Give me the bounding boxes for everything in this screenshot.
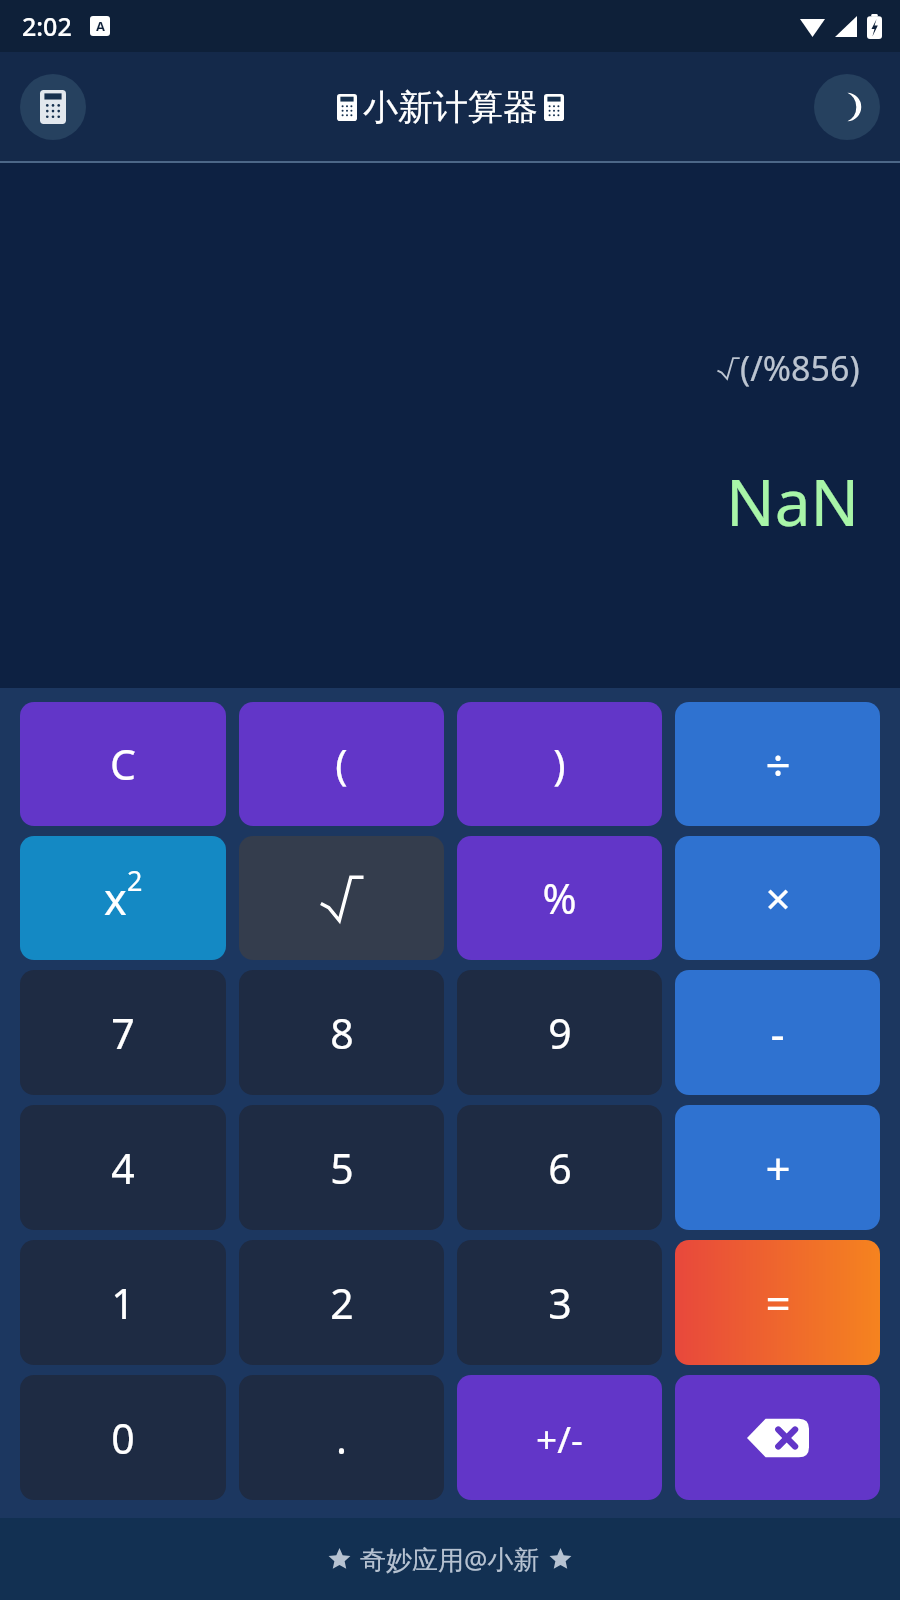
staticText: C	[110, 736, 136, 792]
staticText: -	[770, 1003, 785, 1063]
staticText: ÷	[765, 734, 791, 794]
button[interactable]: %	[457, 836, 662, 960]
button[interactable]: 8	[239, 970, 444, 1095]
staticText: (	[335, 736, 348, 792]
staticText: NaN	[726, 458, 860, 545]
staticText: 4	[111, 1140, 135, 1196]
staticText: %	[542, 870, 577, 926]
staticText: A	[96, 17, 105, 35]
staticText: 2	[330, 1275, 354, 1331]
staticText: +/-	[536, 1413, 583, 1463]
button[interactable]: 9	[457, 970, 662, 1095]
button[interactable]: =	[675, 1240, 880, 1365]
staticText: 2:02	[22, 9, 72, 43]
button[interactable]: Toggle dark mode	[814, 74, 880, 140]
staticText: )	[553, 736, 566, 792]
staticText: +	[765, 1138, 791, 1198]
button[interactable]: .	[239, 1375, 444, 1500]
button[interactable]: -	[675, 970, 880, 1095]
button[interactable]	[239, 836, 444, 960]
button[interactable]: 1	[20, 1240, 226, 1365]
staticText: =	[765, 1273, 791, 1333]
button[interactable]: 7	[20, 970, 226, 1095]
button[interactable]: )	[457, 702, 662, 826]
staticText: 9	[548, 1005, 572, 1061]
staticText: 6	[548, 1140, 572, 1196]
button[interactable]: 3	[457, 1240, 662, 1365]
button[interactable]: C	[20, 702, 226, 826]
button[interactable]: (	[239, 702, 444, 826]
staticText: 5	[330, 1140, 354, 1196]
button[interactable]: 2	[239, 1240, 444, 1365]
staticText: 小新计算器	[363, 85, 538, 129]
staticText: ×	[765, 868, 791, 928]
staticText: 1	[111, 1275, 135, 1331]
staticText: (/%856)	[740, 345, 860, 391]
button[interactable]: 5	[239, 1105, 444, 1230]
button[interactable]: +/-	[457, 1375, 662, 1500]
staticText: 奇妙应用@小新	[360, 1541, 540, 1577]
staticText: x	[104, 869, 127, 928]
button[interactable]: Backspace	[675, 1375, 880, 1500]
button[interactable]: 0	[20, 1375, 226, 1500]
staticText: .	[336, 1410, 347, 1466]
staticText: 8	[330, 1005, 354, 1061]
button[interactable]: Calculator mode	[20, 74, 86, 140]
button[interactable]: ÷	[675, 702, 880, 826]
staticText: 7	[111, 1005, 135, 1061]
staticText: 2	[127, 862, 143, 899]
staticText: 0	[111, 1410, 135, 1466]
button[interactable]: +	[675, 1105, 880, 1230]
button[interactable]: 6	[457, 1105, 662, 1230]
button[interactable]: x	[20, 836, 226, 960]
button[interactable]: 4	[20, 1105, 226, 1230]
button[interactable]: ×	[675, 836, 880, 960]
staticText: 3	[548, 1275, 572, 1331]
